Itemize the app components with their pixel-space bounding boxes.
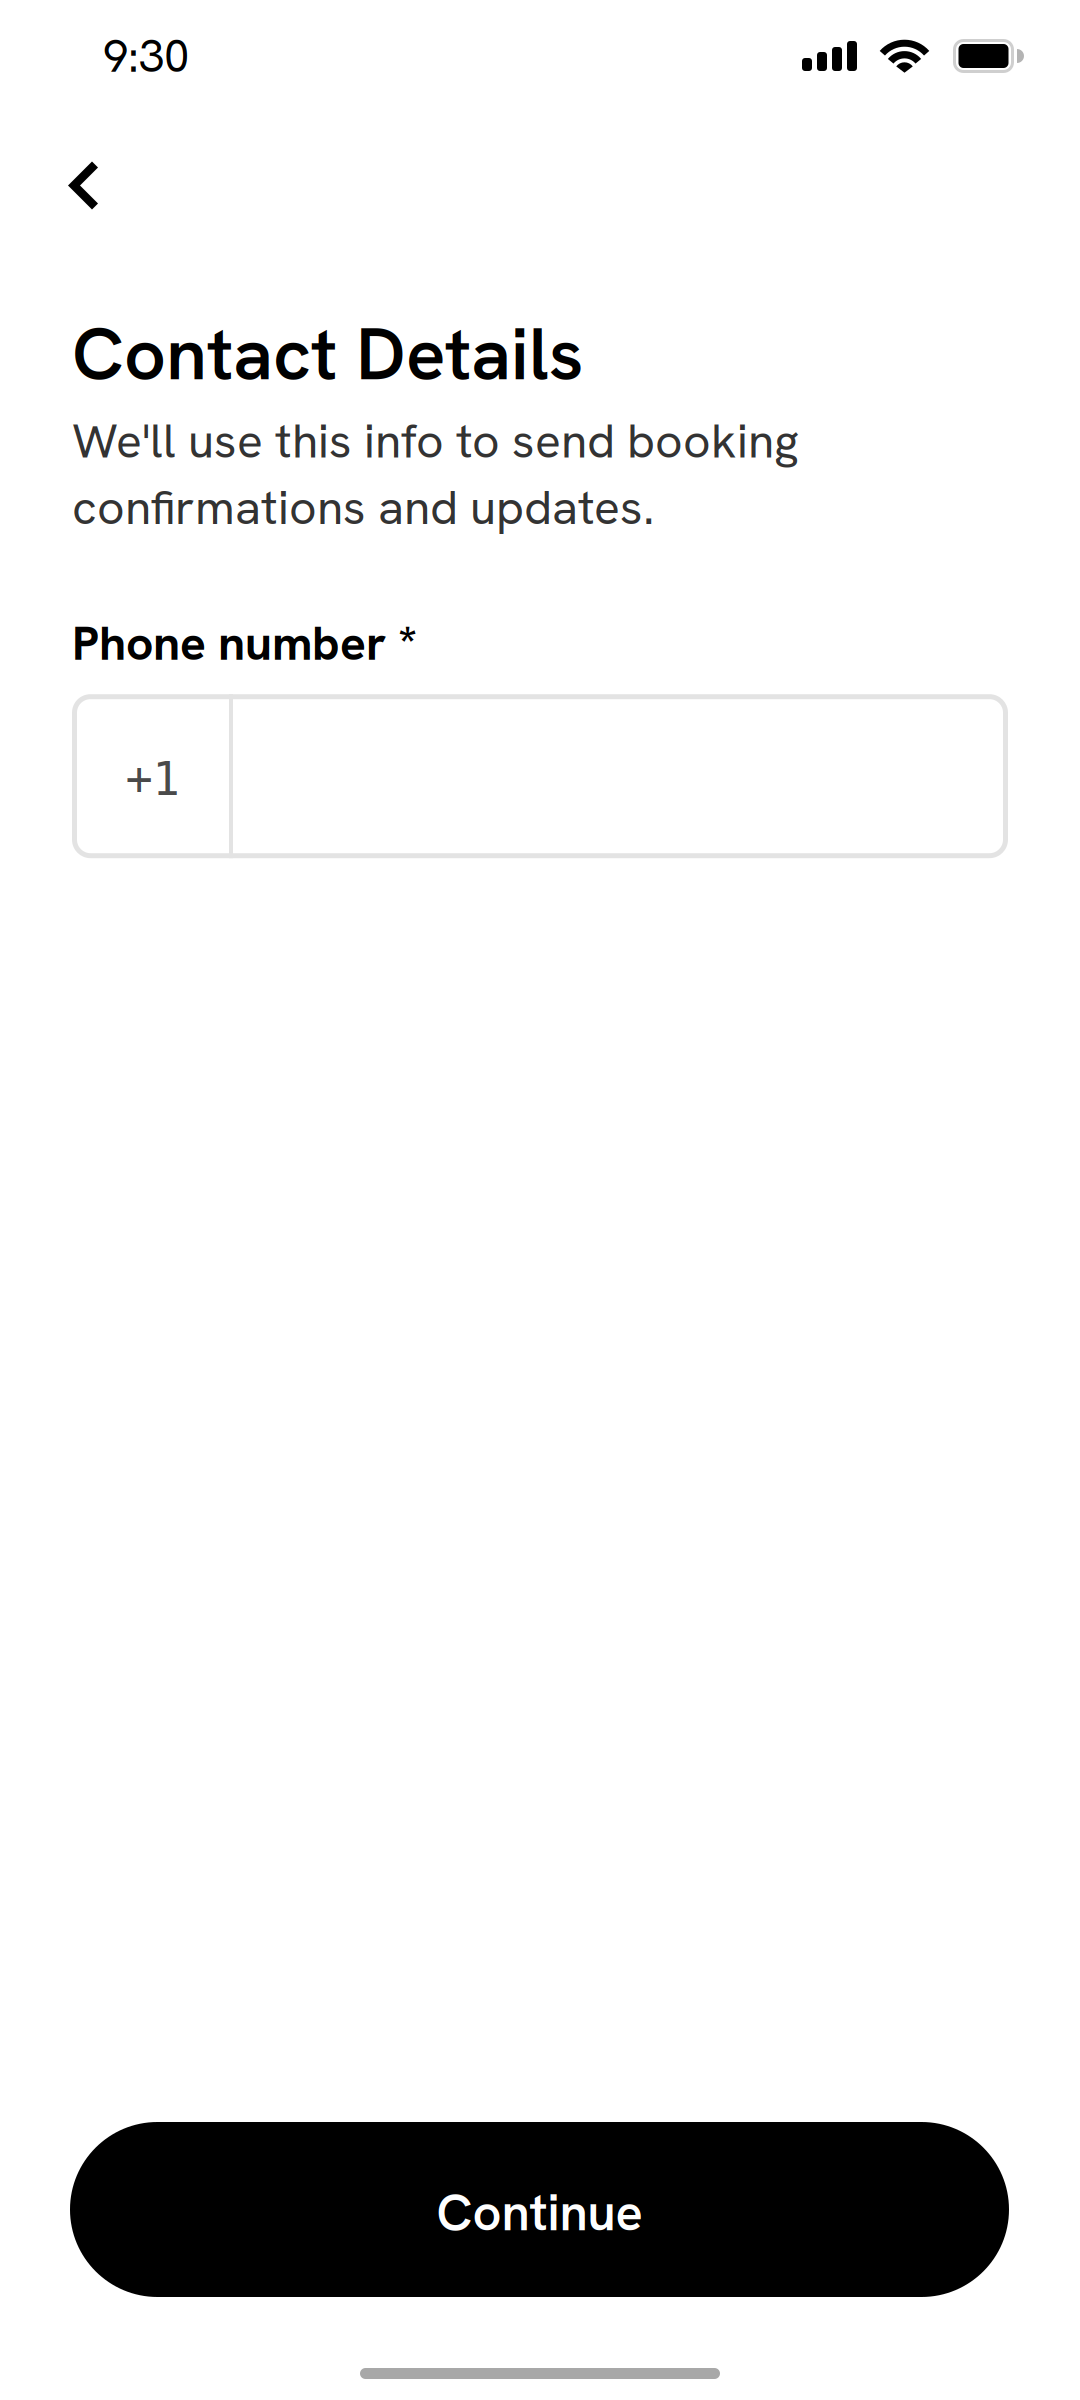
staticText: We'll use this info to send booking conf… xyxy=(72,410,799,539)
button[interactable]: Back xyxy=(0,112,220,243)
staticText: +1 xyxy=(125,753,179,806)
staticText: Phone number * xyxy=(72,612,417,674)
staticText: Contact Details xyxy=(72,306,584,402)
staticText: Continue xyxy=(436,2179,642,2245)
button[interactable]: Continue xyxy=(70,2122,1009,2297)
button[interactable]: +1 xyxy=(72,694,1008,858)
staticText: 9:30 xyxy=(103,26,189,86)
